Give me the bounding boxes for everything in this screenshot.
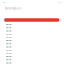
staticText: Item name	[6, 30, 12, 32]
staticText: Item name	[6, 52, 12, 54]
staticText: Item name	[6, 49, 12, 51]
staticText: Item name	[6, 62, 12, 64]
staticText: •••	[58, 1, 61, 3]
staticText: Item name	[6, 56, 12, 57]
staticText: 9:41	[2, 1, 5, 3]
staticText: Item name	[6, 40, 12, 41]
staticText: Item name	[6, 36, 12, 38]
staticText: Item name	[6, 33, 12, 35]
staticText: Item name	[6, 59, 12, 61]
staticText: Item name	[6, 24, 12, 25]
staticText: Item name	[6, 27, 12, 29]
staticText: Item name	[6, 43, 12, 45]
staticText: Notifications	[4, 7, 21, 10]
staticText: Item name	[6, 46, 12, 48]
